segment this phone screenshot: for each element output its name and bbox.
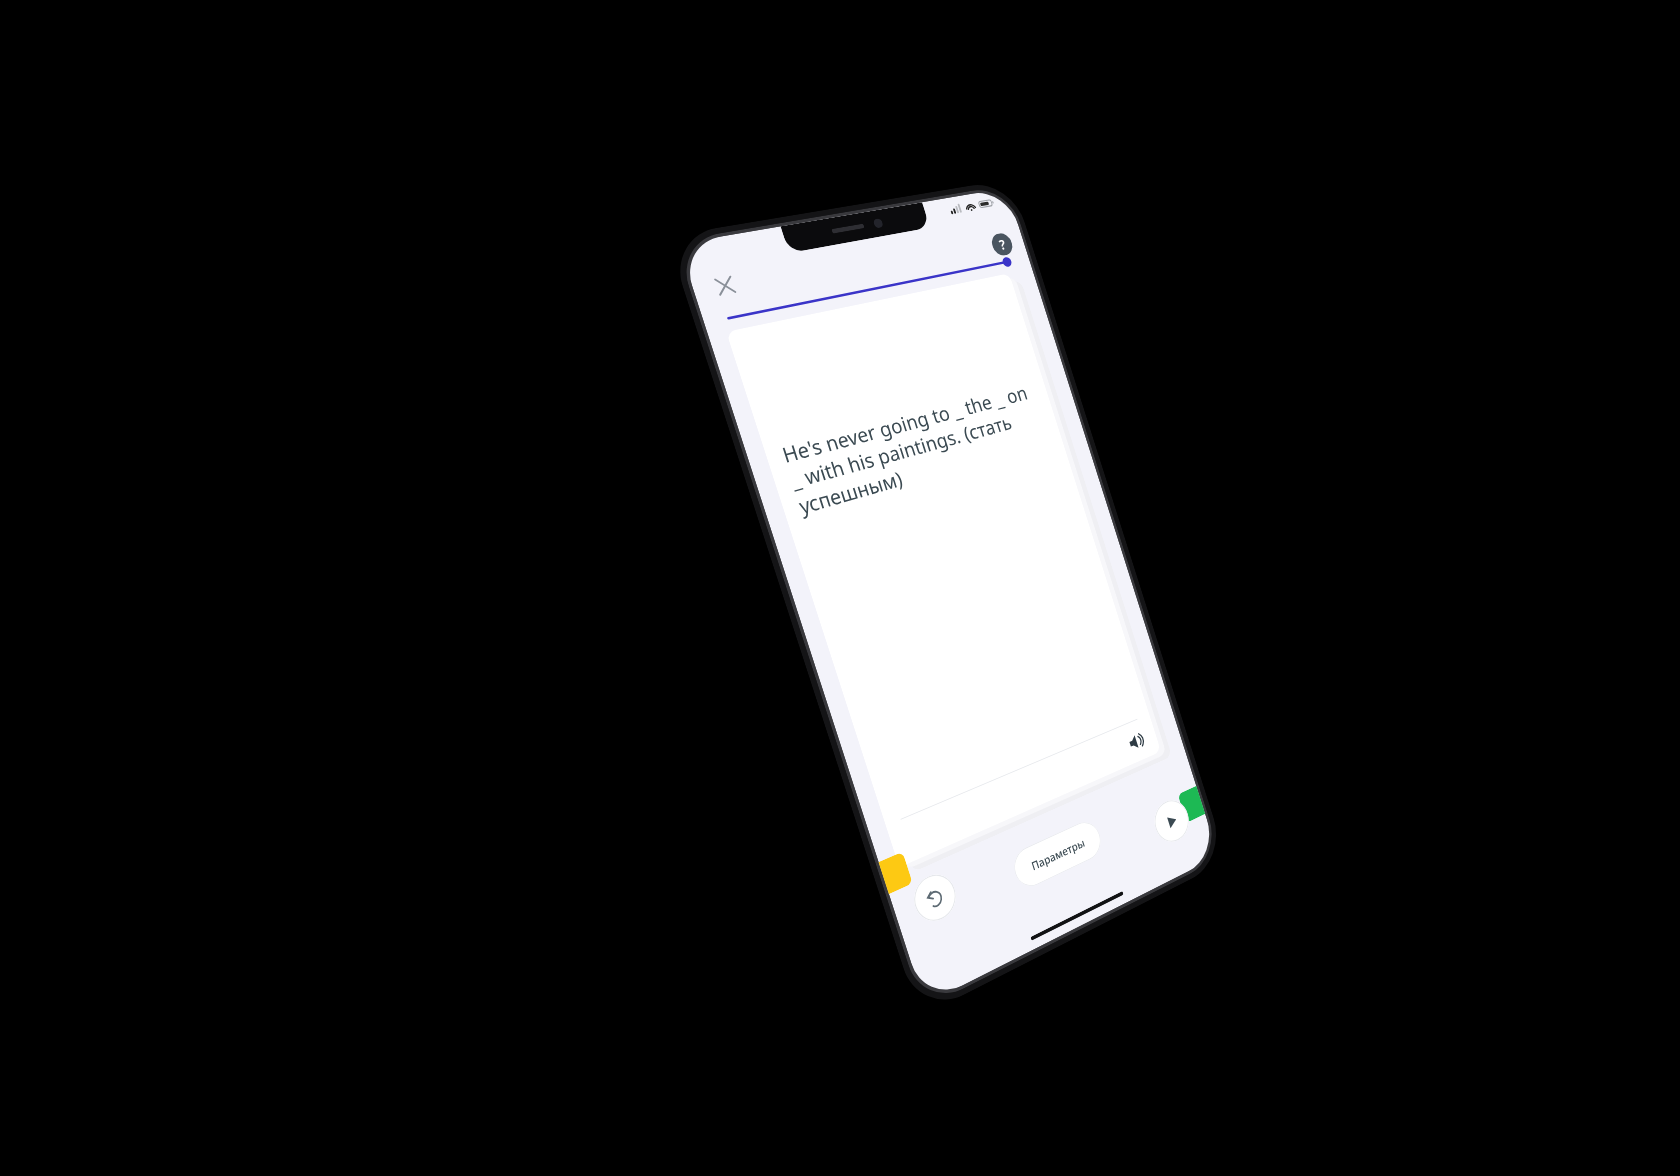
staticText: He's never going to _ the _ on _ with hi… [778, 377, 1054, 520]
button[interactable]: Undo [908, 867, 961, 928]
button[interactable]: Play audio [1118, 720, 1154, 763]
button[interactable]: Know [1178, 786, 1205, 823]
button[interactable]: Параметры [1010, 817, 1105, 892]
staticText: Параметры [1029, 835, 1086, 874]
button[interactable]: Help [989, 232, 1015, 257]
button[interactable]: Close [699, 262, 750, 309]
staticText: ? [997, 235, 1008, 254]
button[interactable]: Next [1149, 794, 1194, 848]
button[interactable]: Don't know [879, 852, 913, 894]
button[interactable]: He's never going to _ the _ on _ with hi… [726, 273, 1161, 868]
